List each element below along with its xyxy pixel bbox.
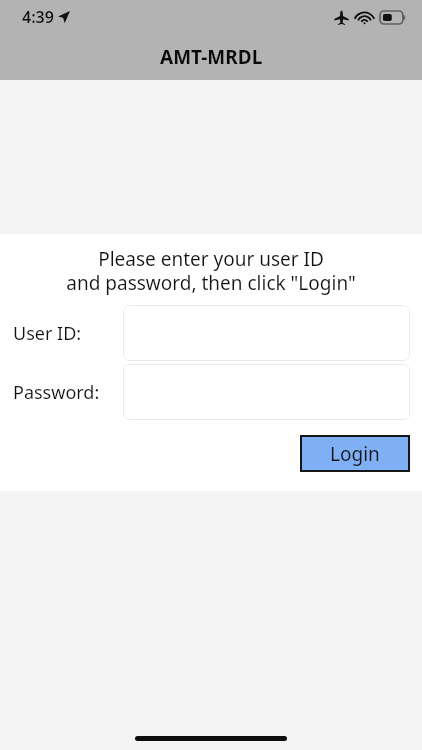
- button[interactable]: User ID:: [123, 305, 410, 361]
- staticText: User ID:: [13, 321, 82, 346]
- button[interactable]: Password:: [123, 364, 410, 420]
- staticText: Login: [330, 441, 380, 467]
- staticText: Please enter your user ID and password, …: [10, 246, 412, 295]
- staticText: Password:: [13, 380, 100, 405]
- staticText: AMT-MRDL: [160, 44, 263, 70]
- button[interactable]: Login: [300, 435, 410, 472]
- staticText: 4:39: [22, 6, 54, 28]
